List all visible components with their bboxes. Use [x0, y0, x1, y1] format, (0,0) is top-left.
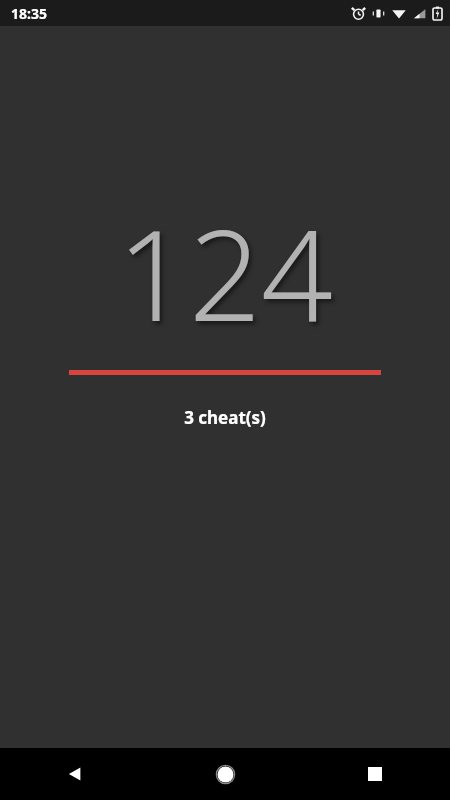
button[interactable]: Back	[0, 748, 150, 800]
staticText: 18:35	[11, 4, 47, 23]
staticText: 124	[117, 186, 333, 358]
button[interactable]: Home	[150, 748, 300, 800]
staticText: 3 cheat(s)	[184, 406, 266, 429]
button[interactable]: Recent apps	[300, 748, 450, 800]
